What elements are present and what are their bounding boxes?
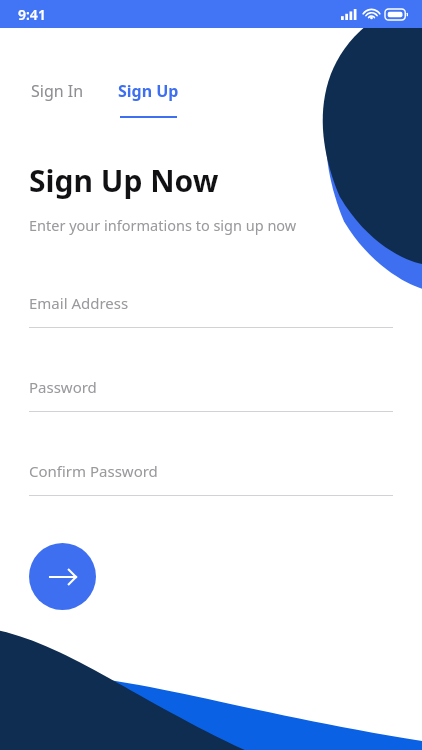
staticText: 9:41 (18, 5, 46, 24)
button[interactable]: Confirm Password (29, 461, 393, 496)
staticText: Email Address (29, 293, 129, 313)
button[interactable]: Continue (29, 543, 96, 610)
button[interactable]: Email Address (29, 293, 393, 328)
button[interactable]: Password (29, 377, 393, 412)
staticText: Sign In (31, 80, 84, 102)
staticText: Sign Up Now (29, 160, 219, 201)
staticText: Confirm Password (29, 461, 158, 481)
staticText: Enter your informations to sign up now (29, 215, 297, 235)
staticText: Sign Up (118, 80, 179, 102)
staticText: Password (29, 377, 97, 397)
button[interactable]: Sign Up (116, 76, 181, 122)
button[interactable]: Sign In (29, 76, 86, 106)
